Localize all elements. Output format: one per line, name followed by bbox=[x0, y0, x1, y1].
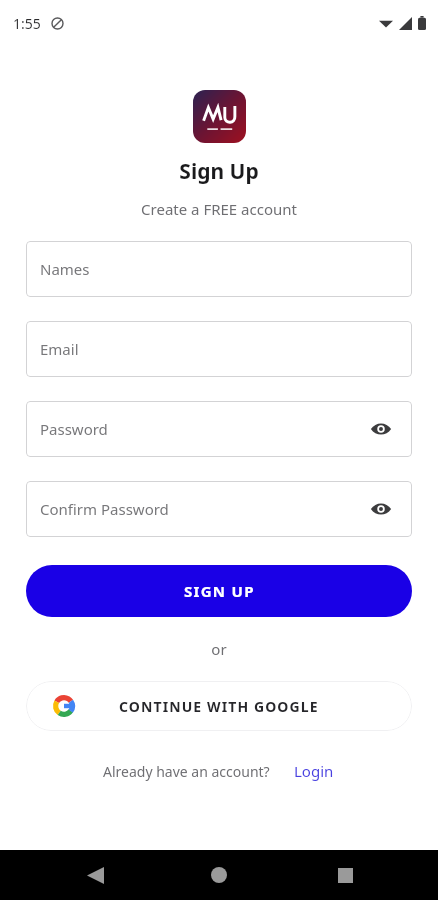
staticText: Sign Up bbox=[0, 157, 438, 186]
staticText: Login bbox=[294, 761, 334, 781]
button[interactable]: Email bbox=[26, 321, 412, 377]
staticText: Password bbox=[40, 419, 108, 439]
button[interactable]: Show password bbox=[366, 494, 396, 524]
button[interactable]: Confirm Password bbox=[26, 481, 412, 537]
button[interactable]: Names bbox=[26, 241, 412, 297]
staticText: Email bbox=[40, 339, 79, 359]
staticText: 1:55 bbox=[13, 14, 41, 33]
staticText: Create a FREE account bbox=[0, 199, 438, 219]
button[interactable]: Show password bbox=[366, 414, 396, 444]
button[interactable]: Back bbox=[78, 858, 112, 892]
staticText: CONTINUE WITH GOOGLE bbox=[119, 697, 319, 716]
button[interactable]: Login bbox=[292, 757, 336, 785]
staticText: Already have an account? bbox=[103, 762, 270, 781]
button[interactable]: Recent apps bbox=[328, 858, 362, 892]
staticText: Confirm Password bbox=[40, 499, 169, 519]
button[interactable]: CONTINUE WITH GOOGLE bbox=[26, 681, 412, 731]
staticText: SIGN UP bbox=[184, 581, 255, 601]
button[interactable]: SIGN UP bbox=[26, 565, 412, 617]
staticText: or bbox=[0, 639, 438, 659]
button[interactable]: Home bbox=[202, 858, 236, 892]
button[interactable]: Password bbox=[26, 401, 412, 457]
staticText: Names bbox=[40, 259, 90, 279]
